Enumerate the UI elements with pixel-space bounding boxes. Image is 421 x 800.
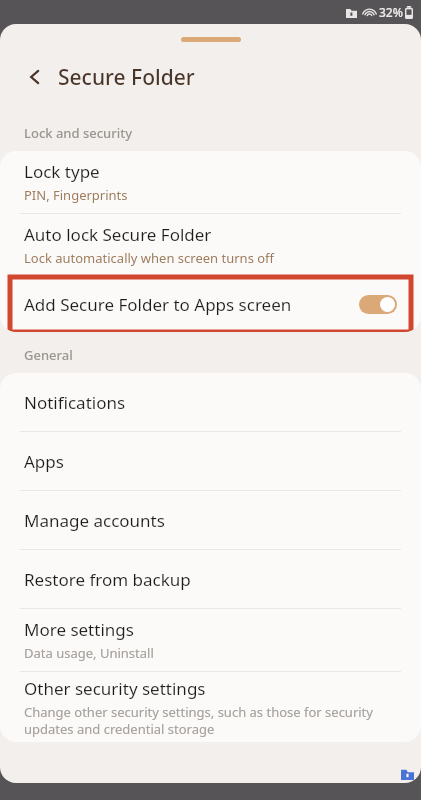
button[interactable]: Manage accounts	[0, 491, 421, 549]
button[interactable]: Restore from backup	[0, 550, 421, 608]
staticText: Lock and security	[24, 124, 133, 142]
staticText: 32%	[379, 4, 403, 20]
button[interactable]: Back	[18, 60, 52, 94]
staticText: Auto lock Secure Folder	[24, 223, 212, 246]
staticText: Lock type	[24, 160, 100, 183]
button[interactable]: Other security settings	[0, 672, 421, 742]
staticText: Notifications	[24, 391, 126, 414]
staticText: Change other security settings, such as …	[24, 703, 397, 738]
staticText: Secure Folder	[58, 63, 195, 92]
button[interactable]: More settings	[0, 609, 421, 671]
staticText: Manage accounts	[24, 509, 165, 532]
button[interactable]: Add Secure Folder to Apps screen	[0, 277, 421, 332]
button[interactable]: Auto lock Secure Folder	[0, 214, 421, 276]
staticText: General	[24, 346, 73, 364]
button[interactable]: Notifications	[0, 373, 421, 431]
staticText: Apps	[24, 450, 64, 473]
staticText: Data usage, Uninstall	[24, 644, 154, 662]
staticText: Lock automatically when screen turns off	[24, 249, 275, 267]
staticText: Restore from backup	[24, 568, 191, 591]
staticText: Add Secure Folder to Apps screen	[24, 293, 292, 316]
staticText: Other security settings	[24, 677, 206, 700]
button[interactable]: Lock type	[0, 151, 421, 213]
staticText: More settings	[24, 618, 134, 641]
button[interactable]: Apps	[0, 432, 421, 490]
staticText: PIN, Fingerprints	[24, 186, 128, 204]
